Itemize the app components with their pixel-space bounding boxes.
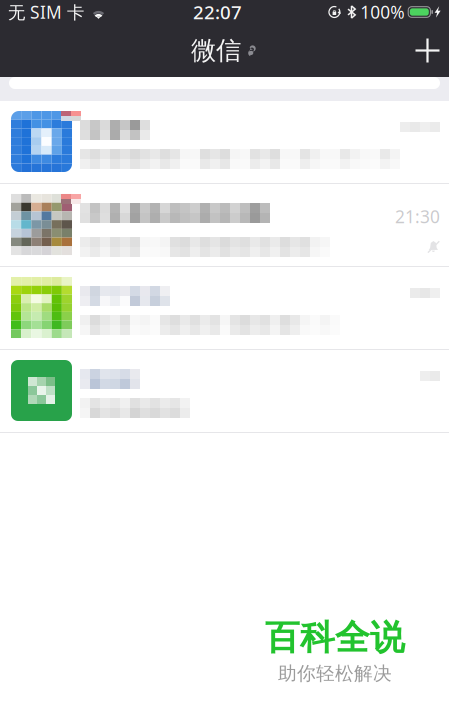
staticText: 百科全说 — [265, 616, 405, 659]
button[interactable]: 21:30 — [0, 184, 449, 267]
button[interactable] — [0, 267, 449, 350]
staticText: 助你轻松解决 — [278, 662, 392, 685]
button[interactable]: New chat — [406, 24, 449, 77]
staticText: 微信 — [191, 35, 241, 66]
staticText: 21:30 — [395, 205, 440, 228]
staticText: 100% — [360, 0, 404, 23]
staticText: 无 SIM 卡 — [8, 0, 84, 23]
staticText: 22:07 — [193, 0, 242, 24]
button[interactable] — [0, 101, 449, 184]
button[interactable] — [0, 350, 449, 433]
